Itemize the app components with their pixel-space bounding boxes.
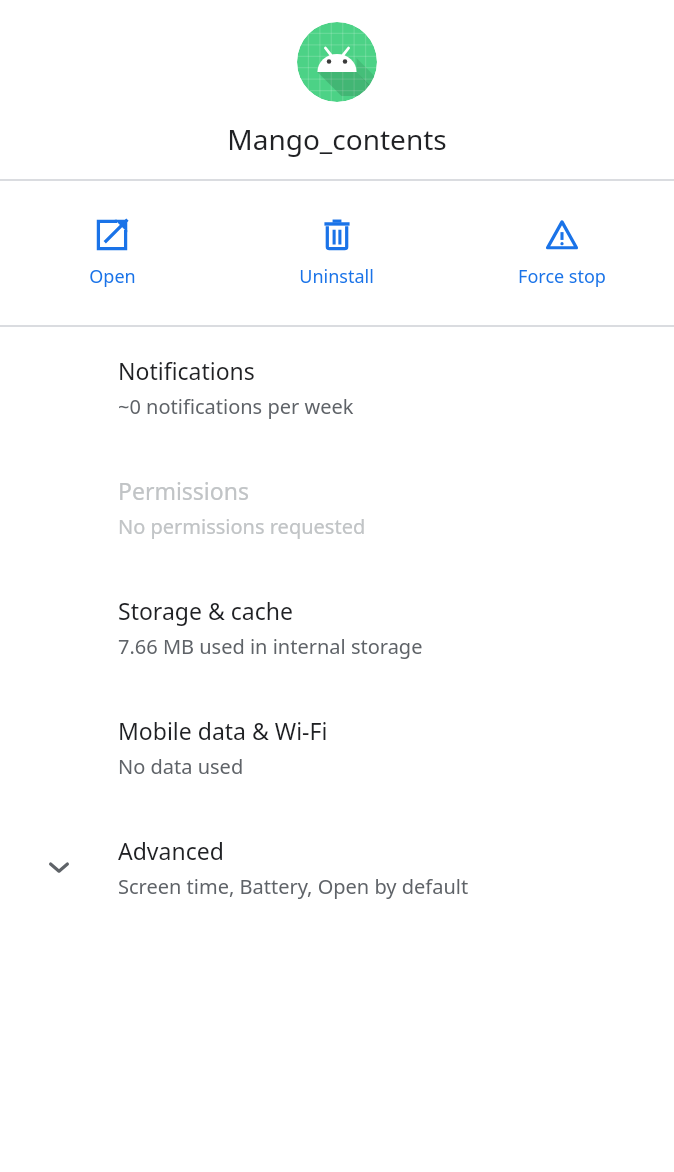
staticText: ~0 notifications per week xyxy=(118,393,354,420)
button[interactable]: Open xyxy=(0,181,224,325)
staticText: No data used xyxy=(118,753,244,780)
button[interactable]: Expand advanced xyxy=(0,807,674,927)
staticText: Force stop xyxy=(518,264,606,289)
staticText: Storage & cache xyxy=(118,595,293,626)
staticText: Advanced xyxy=(118,835,224,866)
button[interactable]: Notifications xyxy=(0,327,674,447)
staticText: Notifications xyxy=(118,355,255,386)
staticText: Open xyxy=(89,264,136,289)
staticText: Mango_contents xyxy=(227,120,447,158)
staticText: Permissions xyxy=(118,475,249,506)
button[interactable]: Permissions xyxy=(0,447,674,567)
staticText: Screen time, Battery, Open by default xyxy=(118,873,469,900)
button[interactable]: Mobile data & Wi-Fi xyxy=(0,687,674,807)
other: Force stop xyxy=(545,218,579,252)
staticText: 7.66 MB used in internal storage xyxy=(118,633,423,660)
other: Uninstall xyxy=(320,218,354,252)
button[interactable]: Force stop xyxy=(449,181,674,325)
other: Open xyxy=(95,218,129,252)
button[interactable]: Storage & cache xyxy=(0,567,674,687)
button[interactable]: Uninstall xyxy=(224,181,449,325)
staticText: Mobile data & Wi-Fi xyxy=(118,715,328,746)
staticText: Uninstall xyxy=(299,264,374,289)
other: Expand advanced xyxy=(44,852,74,882)
staticText: No permissions requested xyxy=(118,513,366,540)
